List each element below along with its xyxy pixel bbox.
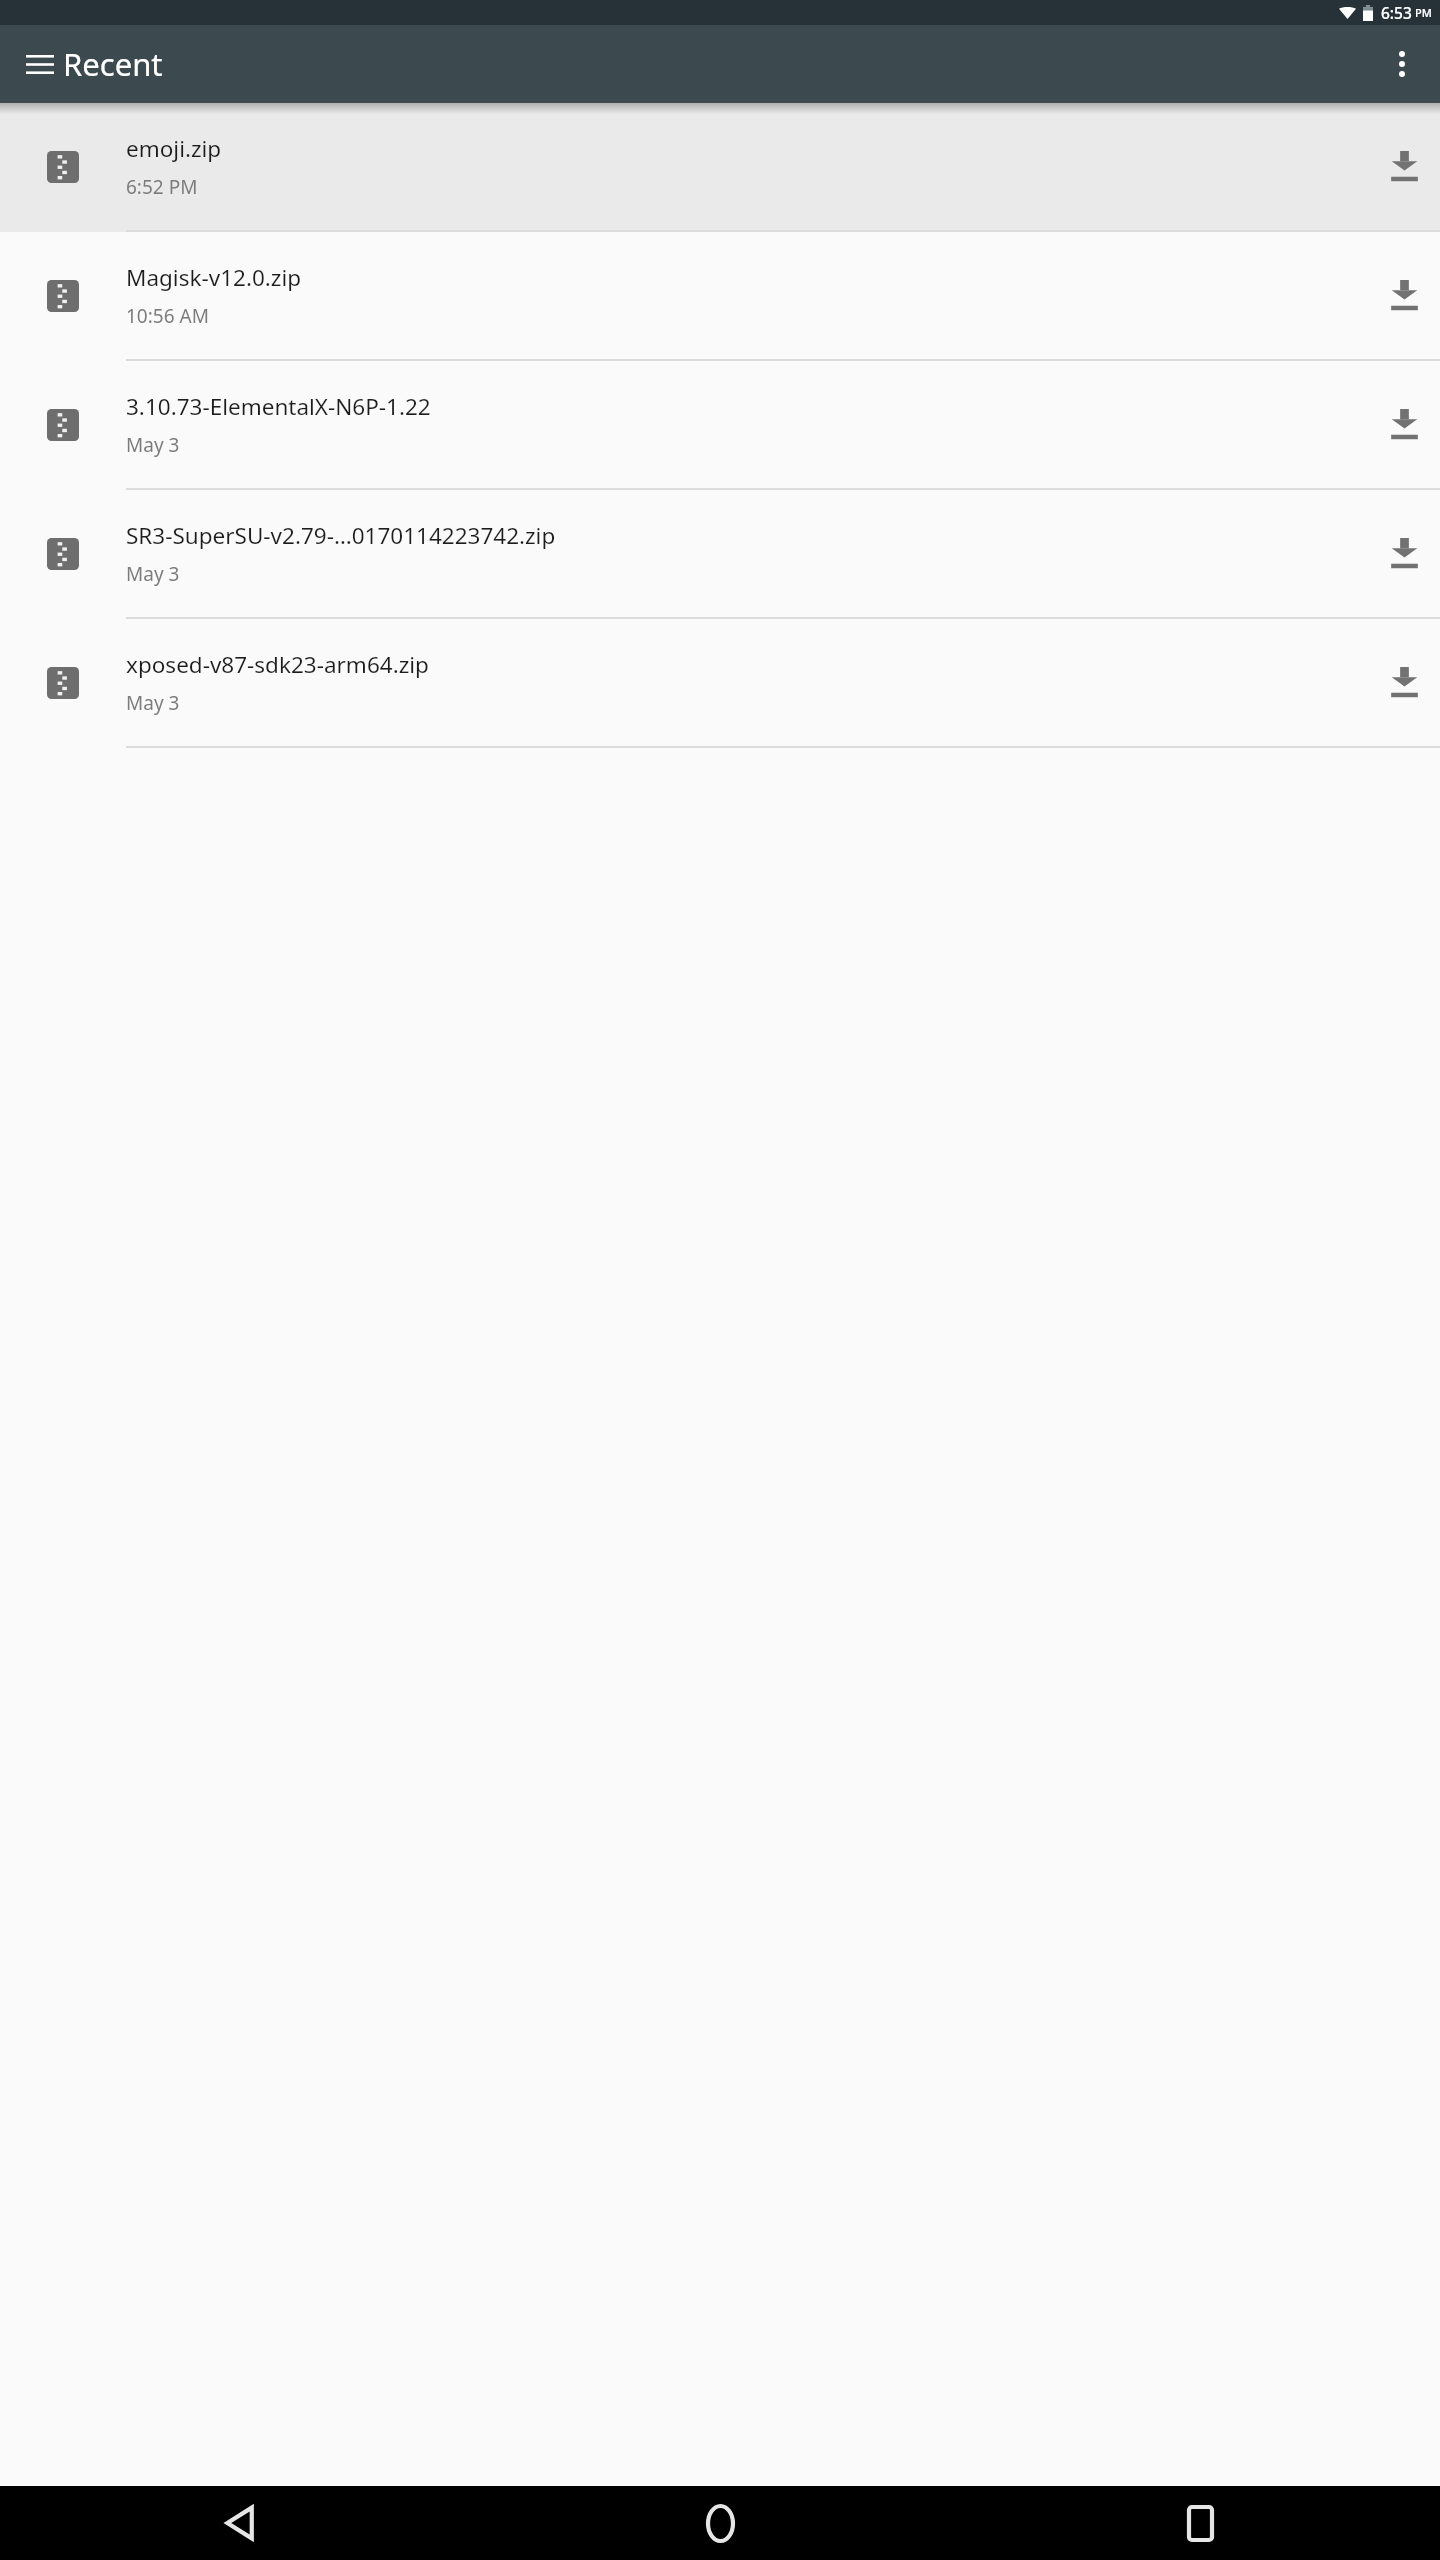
button[interactable]: Magisk-v12.0.zip: [0, 232, 1440, 361]
button[interactable]: Back: [0, 2486, 480, 2560]
button[interactable]: Download: [1368, 103, 1440, 230]
staticText: Magisk-v12.0.zip: [126, 262, 302, 293]
staticText: May 3: [126, 561, 180, 587]
staticText: 10:56 AM: [126, 303, 209, 329]
button[interactable]: Open navigation drawer: [12, 36, 68, 92]
button[interactable]: SR3-SuperSU-v2.79-…0170114223742.zip: [0, 490, 1440, 619]
staticText: 3.10.73-ElementalX-N6P-1.22: [126, 391, 431, 422]
button[interactable]: Download: [1368, 619, 1440, 746]
staticText: 6:53: [1381, 2, 1412, 23]
staticText: emoji.zip: [126, 133, 222, 164]
button[interactable]: More options: [1374, 36, 1430, 92]
button[interactable]: 3.10.73-ElementalX-N6P-1.22: [0, 361, 1440, 490]
button[interactable]: Download: [1368, 490, 1440, 617]
staticText: PM: [1415, 5, 1432, 20]
staticText: SR3-SuperSU-v2.79-…0170114223742.zip: [126, 520, 556, 551]
staticText: May 3: [126, 690, 180, 716]
staticText: xposed-v87-sdk23-arm64.zip: [126, 649, 429, 680]
button[interactable]: emoji.zip: [0, 103, 1440, 232]
button[interactable]: Recent apps: [960, 2486, 1440, 2560]
button[interactable]: Download: [1368, 361, 1440, 488]
button[interactable]: Download: [1368, 232, 1440, 359]
staticText: Recent: [63, 43, 163, 85]
button[interactable]: xposed-v87-sdk23-arm64.zip: [0, 619, 1440, 748]
button[interactable]: Home: [480, 2486, 960, 2560]
staticText: 6:52 PM: [126, 174, 198, 200]
staticText: May 3: [126, 432, 180, 458]
